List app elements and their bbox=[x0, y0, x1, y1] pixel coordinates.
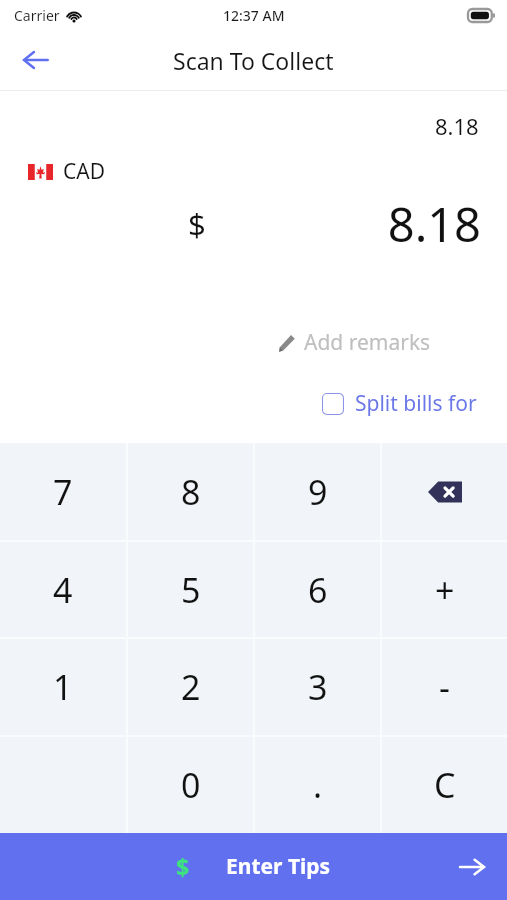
button[interactable]: 0 bbox=[128, 737, 253, 833]
staticText: 8.18 bbox=[206, 192, 481, 256]
button[interactable]: Add remarks bbox=[277, 328, 431, 357]
staticText: Scan To Collect bbox=[173, 45, 334, 76]
button[interactable]: 4 bbox=[0, 542, 126, 637]
staticText: 9 bbox=[308, 469, 328, 515]
staticText: Carrier bbox=[14, 6, 60, 25]
staticText: 2 bbox=[181, 664, 201, 710]
staticText: 8 bbox=[181, 469, 201, 515]
button[interactable]: Back bbox=[12, 36, 60, 84]
staticText: 6 bbox=[308, 567, 328, 613]
staticText: 4 bbox=[53, 567, 73, 613]
staticText: - bbox=[439, 664, 450, 710]
staticText: + bbox=[435, 567, 455, 613]
button[interactable]: 8 bbox=[128, 443, 253, 540]
staticText: 7 bbox=[53, 469, 73, 515]
staticText: . bbox=[313, 762, 323, 808]
button[interactable]: 2 bbox=[128, 639, 253, 735]
button[interactable]: C bbox=[382, 737, 507, 833]
button[interactable]: $ bbox=[0, 833, 507, 900]
button[interactable]: 9 bbox=[255, 443, 380, 540]
staticText: Enter Tips bbox=[226, 852, 331, 881]
button[interactable]: 7 bbox=[0, 443, 126, 540]
button[interactable]: 1 bbox=[0, 639, 126, 735]
staticText: 8.18 bbox=[435, 111, 479, 141]
staticText: 5 bbox=[181, 567, 201, 613]
button[interactable]: CAD bbox=[28, 157, 106, 186]
staticText: $ bbox=[188, 203, 206, 245]
staticText: CAD bbox=[63, 157, 106, 186]
button[interactable]: - bbox=[382, 639, 507, 735]
button[interactable]: + bbox=[382, 542, 507, 637]
button[interactable]: Backspace bbox=[382, 443, 507, 540]
staticText: 0 bbox=[181, 762, 201, 808]
staticText: 3 bbox=[308, 664, 328, 710]
button[interactable]: 6 bbox=[255, 542, 380, 637]
staticText: $ bbox=[176, 851, 190, 882]
button[interactable]: 3 bbox=[255, 639, 380, 735]
other: Backspace bbox=[382, 443, 507, 540]
button[interactable]: . bbox=[255, 737, 380, 833]
button[interactable]: Split bills for bbox=[322, 389, 477, 418]
staticText: C bbox=[434, 762, 456, 808]
button[interactable]: 5 bbox=[128, 542, 253, 637]
staticText: 12:37 AM bbox=[223, 6, 285, 25]
staticText: Add remarks bbox=[304, 328, 431, 357]
staticText: 1 bbox=[53, 664, 73, 710]
staticText: Split bills for bbox=[355, 389, 477, 418]
